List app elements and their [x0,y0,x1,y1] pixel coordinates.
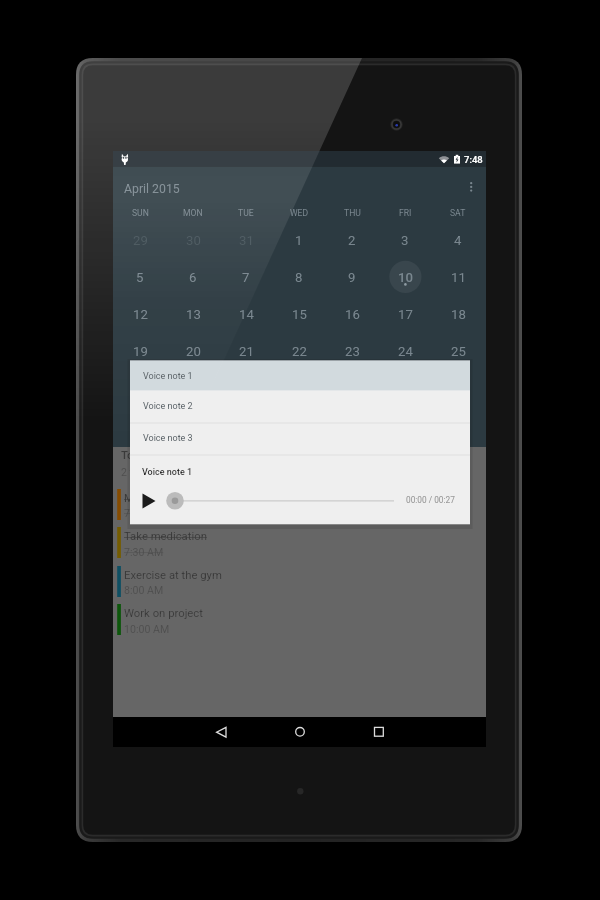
staticText: Today [121,449,152,462]
staticText: 7:48 [464,154,483,165]
staticText: 6 [189,270,197,285]
staticText: 8 [295,270,303,285]
staticText: 21 [239,344,254,359]
staticText: 20 [186,344,201,359]
staticText: 23 [345,344,360,359]
staticText: 00:00 / 00:27 [406,495,455,505]
button[interactable]: Back [196,717,246,747]
staticText: 13 [186,307,201,322]
staticText: TUE [238,208,254,218]
staticText: 2 [454,381,462,396]
staticText: Voice note 1 [142,467,193,478]
staticText: 30 [186,233,201,248]
button[interactable] [113,486,486,523]
staticText: THU [344,208,361,218]
staticText: 7:30 AM [124,546,164,558]
staticText: 16 [345,307,360,322]
staticText: 28 [239,381,254,396]
staticText: 14 [239,307,254,322]
staticText: Voice note 3 [143,433,193,444]
staticText: 9 [348,270,356,285]
staticText: Work on project [124,607,203,620]
button[interactable] [113,563,486,600]
staticText: 30 [345,381,360,396]
staticText: 19 [133,344,148,359]
staticText: 10:00 AM [124,623,170,635]
staticText: 4 [454,233,462,248]
staticText: FRI [399,208,412,218]
staticText: 7 [242,270,250,285]
staticText: Morning run [124,492,185,505]
staticText: SUN [132,208,149,218]
button[interactable]: Recent apps [354,717,404,747]
staticText: 18 [451,307,466,322]
staticText: 1 [295,233,303,248]
button[interactable]: Home [275,717,325,747]
staticText: 8:00 AM [124,584,164,596]
button[interactable] [113,601,486,638]
staticText: 7:00 AM [124,507,164,519]
staticText: 11 [451,270,466,285]
staticText: 29 [292,381,307,396]
staticText: 25 [451,344,466,359]
staticText: 3 [401,233,409,248]
staticText: 10 [398,270,413,285]
staticText: 22 [292,344,307,359]
staticText: 1 [401,381,409,396]
staticText: 12 [133,307,148,322]
staticText: Voice note 2 [143,401,193,412]
button[interactable] [113,524,486,561]
staticText: 24 [398,344,413,359]
staticText: 2 [348,233,356,248]
staticText: 5 [136,270,144,285]
button[interactable]: More options [461,174,482,195]
staticText: MON [183,208,203,218]
staticText: SAT [450,208,466,218]
staticText: Exercise at the gym [124,569,222,582]
staticText: 27 [186,381,201,396]
staticText: Voice note 1 [143,371,193,382]
staticText: April 2015 [124,182,180,196]
staticText: 2 tasks left [121,466,174,478]
staticText: 29 [133,233,148,248]
staticText: 26 [133,381,148,396]
staticText: Take medication [124,530,207,543]
staticText: 17 [398,307,413,322]
staticText: 15 [292,307,307,322]
staticText: 31 [239,233,254,248]
staticText: WED [290,208,309,218]
